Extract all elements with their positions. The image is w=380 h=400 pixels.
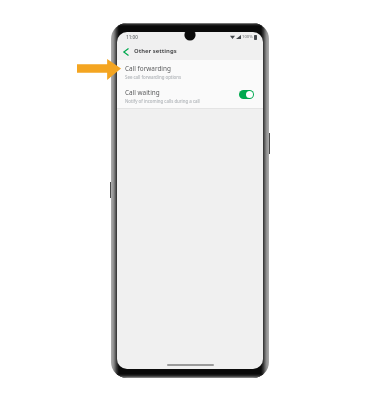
staticText: 100% <box>242 34 253 40</box>
staticText: Call waiting <box>125 88 160 97</box>
button[interactable]: Call waiting <box>117 84 263 108</box>
staticText: See call forwarding options <box>125 74 182 80</box>
button[interactable]: Call forwarding <box>117 60 263 84</box>
staticText: 11:00 <box>126 34 138 40</box>
staticText: Call forwarding <box>125 64 171 73</box>
staticText: Other settings <box>134 47 177 55</box>
button[interactable]: Back <box>119 45 132 58</box>
staticText: Notify of incoming calls during a call <box>125 98 200 104</box>
